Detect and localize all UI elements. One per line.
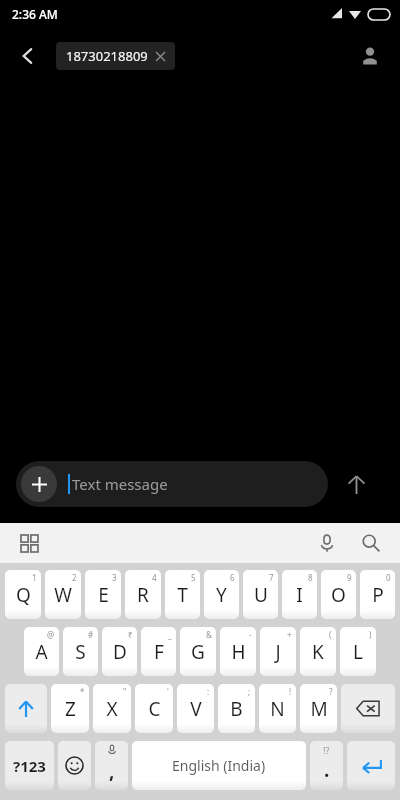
other: Backspace [356, 700, 380, 717]
button[interactable]: Q [5, 570, 41, 619]
staticText: 4 [152, 572, 157, 583]
button[interactable]: S [63, 627, 98, 676]
staticText: N [270, 696, 285, 722]
button[interactable]: O [321, 570, 356, 619]
button[interactable]: P [360, 570, 395, 619]
button[interactable]: K [300, 627, 336, 676]
button[interactable]: . [310, 741, 343, 790]
button[interactable]: Send [328, 461, 384, 507]
staticText: ? [329, 686, 333, 697]
button[interactable]: Enter [347, 741, 395, 790]
button[interactable]: Comma [95, 741, 128, 790]
staticText: ! [289, 686, 292, 697]
other: Comma [95, 741, 128, 790]
staticText: 1 [32, 572, 37, 583]
other: Shift [16, 699, 36, 719]
button[interactable]: D [102, 627, 137, 676]
button[interactable]: J [260, 627, 296, 676]
button[interactable]: 18730218809 [56, 42, 175, 70]
staticText: U [254, 582, 268, 608]
other: Emoji [65, 756, 84, 775]
staticText: S [75, 639, 86, 665]
staticText: J [275, 639, 281, 665]
staticText: T [177, 582, 188, 608]
button[interactable]: R [125, 570, 161, 619]
button[interactable]: Shift [5, 684, 47, 733]
staticText: ; [248, 686, 251, 697]
button[interactable]: Y [204, 570, 239, 619]
staticText: Z [65, 696, 76, 722]
button[interactable]: I [282, 570, 317, 619]
button[interactable]: G [180, 627, 216, 676]
staticText: O [331, 582, 346, 608]
button[interactable]: English (India) [132, 741, 306, 790]
staticText: A [35, 639, 48, 665]
staticText: X [106, 696, 118, 722]
button[interactable]: B [218, 684, 255, 733]
button[interactable]: F [141, 627, 176, 676]
staticText: ( [329, 629, 332, 640]
staticText: B [230, 696, 243, 722]
staticText: 0 [386, 572, 391, 583]
staticText: 18730218809 [66, 47, 148, 65]
staticText: 8 [308, 572, 313, 583]
staticText: M [310, 696, 328, 722]
staticText: P [372, 582, 384, 608]
staticText: R [137, 582, 149, 608]
staticText: E [98, 582, 109, 608]
staticText: 2:36 AM [12, 6, 58, 22]
staticText: " [123, 686, 127, 697]
staticText: 9 [347, 572, 352, 583]
staticText: 7 [269, 572, 274, 583]
button[interactable]: N [259, 684, 296, 733]
staticText: I [296, 582, 303, 608]
staticText: 6 [230, 572, 235, 583]
staticText: ?123 [13, 756, 46, 776]
staticText: # [88, 629, 94, 640]
button[interactable]: Backspace [341, 684, 395, 733]
button[interactable]: E [85, 570, 121, 619]
button[interactable]: Voice input [310, 526, 344, 560]
button[interactable]: W [45, 570, 81, 619]
staticText: * [80, 686, 85, 697]
staticText: : [207, 686, 210, 697]
staticText: D [113, 639, 127, 665]
button[interactable]: Z [51, 684, 89, 733]
staticText: Text message [72, 474, 168, 494]
button[interactable]: L [340, 627, 376, 676]
button[interactable]: M [300, 684, 337, 733]
button[interactable]: Add attachment [21, 466, 57, 502]
button[interactable]: V [177, 684, 214, 733]
staticText: ' [167, 686, 169, 697]
button[interactable]: Back [6, 34, 50, 78]
staticText: C [148, 696, 161, 722]
button[interactable]: T [165, 570, 200, 619]
button[interactable]: H [220, 627, 256, 676]
staticText: & [206, 629, 212, 640]
staticText: W [54, 582, 72, 608]
button[interactable]: Contact details [348, 34, 392, 78]
staticText: , [109, 758, 115, 784]
staticText: L [353, 639, 363, 665]
staticText: @ [47, 629, 55, 640]
staticText: 2 [72, 572, 77, 583]
button[interactable]: Search [354, 526, 388, 560]
button[interactable]: Emoji [58, 741, 91, 790]
button[interactable]: Clipboard [14, 528, 44, 558]
staticText: 3 [112, 572, 117, 583]
staticText: ₹ [128, 629, 133, 640]
staticText: _ [168, 629, 172, 640]
button[interactable]: Add attachment [16, 461, 328, 507]
staticText: V [190, 696, 202, 722]
staticText: - [249, 629, 252, 640]
staticText: 5 [191, 572, 196, 583]
staticText: Q [16, 582, 31, 608]
button[interactable]: ?123 [5, 741, 54, 790]
staticText: G [191, 639, 205, 665]
staticText: K [312, 639, 324, 665]
button[interactable]: A [24, 627, 59, 676]
button[interactable]: U [243, 570, 278, 619]
button[interactable]: C [135, 684, 173, 733]
staticText: F [154, 639, 164, 665]
button[interactable]: X [93, 684, 131, 733]
